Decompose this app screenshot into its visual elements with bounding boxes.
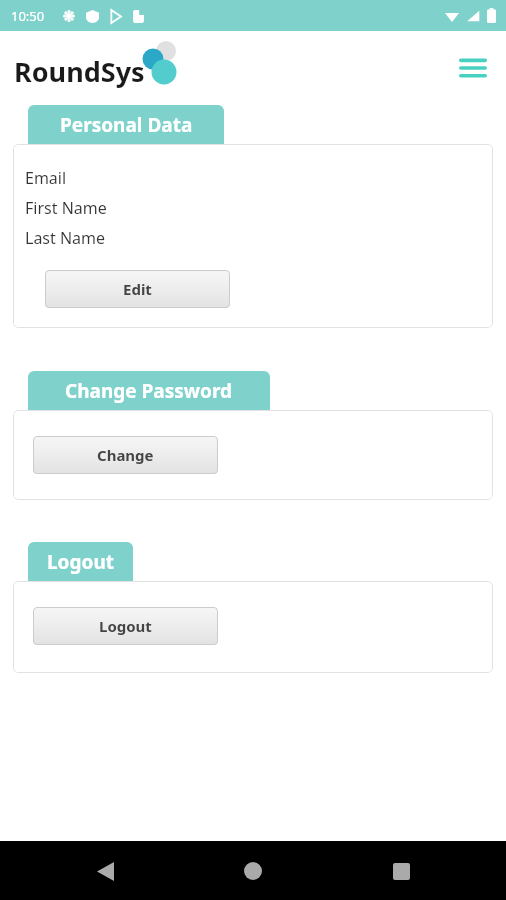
- staticText: Personal Data: [60, 112, 193, 138]
- staticText: Change Password: [65, 378, 233, 404]
- staticText: Last Name: [25, 227, 106, 249]
- staticText: Edit: [123, 279, 152, 299]
- button[interactable]: Back: [85, 851, 125, 891]
- button[interactable]: Home: [233, 851, 273, 891]
- staticText: Email: [25, 167, 67, 189]
- button[interactable]: Menu: [452, 47, 494, 89]
- button[interactable]: Change: [33, 436, 218, 474]
- button[interactable]: Logout: [33, 607, 218, 645]
- staticText: RoundSys: [14, 53, 145, 90]
- staticText: Logout: [99, 616, 152, 636]
- staticText: 10:50: [11, 7, 45, 25]
- staticText: Change: [97, 445, 154, 465]
- button[interactable]: Recent apps: [381, 851, 421, 891]
- button[interactable]: Edit: [45, 270, 230, 308]
- staticText: Logout: [47, 549, 114, 575]
- staticText: First Name: [25, 197, 107, 219]
